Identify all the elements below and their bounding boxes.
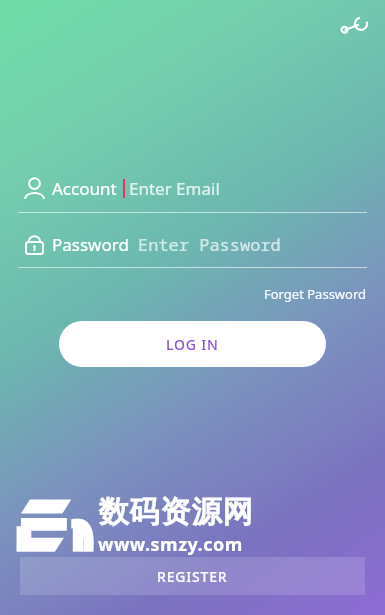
staticText: Password (52, 233, 129, 256)
staticText: Forget Password (264, 285, 367, 303)
staticText: 数码资源网 (98, 493, 253, 531)
staticText: www.smzy.com (98, 532, 243, 557)
staticText: Enter Email (129, 177, 220, 200)
staticText: REGISTER (157, 567, 228, 586)
staticText: Account (52, 177, 117, 200)
button[interactable]: LOG IN (59, 321, 326, 367)
button[interactable]: Password (0, 225, 385, 263)
button[interactable]: REGISTER (20, 557, 365, 595)
staticText: Enter Password (138, 233, 281, 256)
staticText: LOG IN (166, 335, 219, 354)
button[interactable]: Forget Password (246, 281, 385, 307)
button[interactable]: Account (0, 168, 385, 208)
button[interactable]: Settings (337, 8, 373, 44)
